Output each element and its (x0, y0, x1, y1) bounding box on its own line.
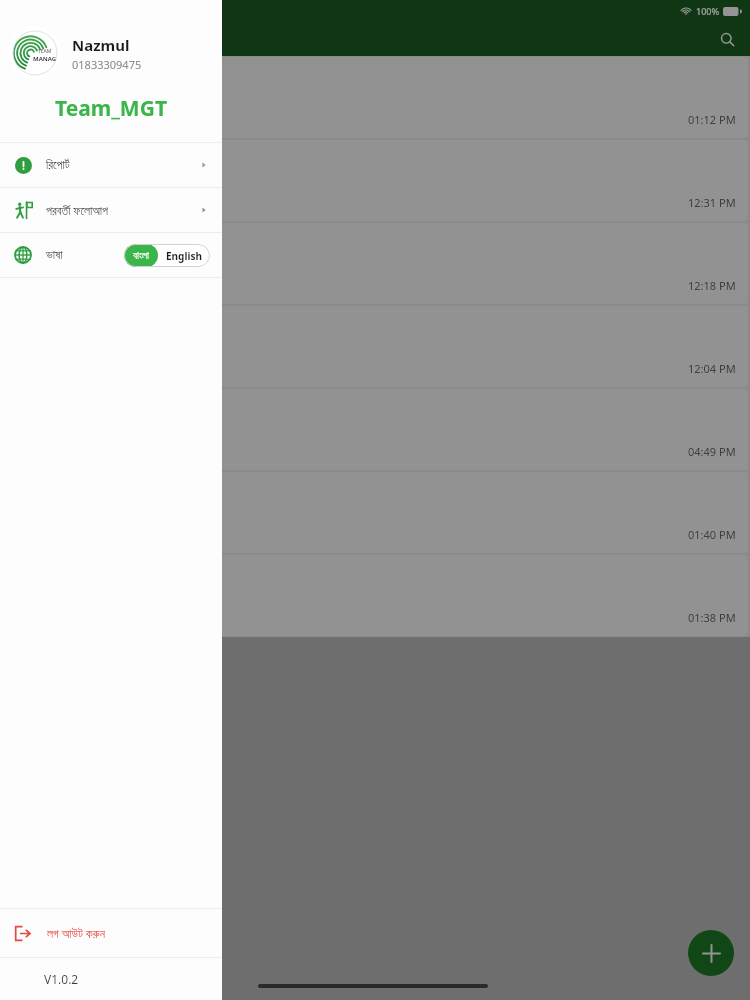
staticText: বাংলা (133, 251, 149, 261)
button[interactable]: 12:04 PM (2, 306, 748, 387)
staticText: Team_MGT (125, 43, 172, 55)
button[interactable]: বাংলা (124, 244, 210, 267)
button[interactable]: ভাষা (0, 233, 222, 277)
button[interactable]: Search (710, 22, 744, 56)
staticText: Nazmul (72, 35, 130, 55)
staticText: 01:12 PM (688, 112, 736, 127)
staticText: রিপোর্ট (46, 159, 70, 171)
button[interactable]: 04:49 PM (2, 389, 748, 470)
staticText: 12:31 PM (688, 195, 736, 210)
staticText: TEAM (38, 48, 52, 55)
button[interactable]: 01:38 PM (2, 555, 748, 636)
staticText: 12:04 PM (688, 361, 736, 376)
staticText: 04:49 PM (688, 444, 736, 459)
staticText: 100% (696, 5, 720, 17)
staticText: 01:40 PM (688, 527, 736, 542)
button[interactable]: Add (688, 930, 734, 976)
staticText: English (166, 249, 202, 263)
staticText: 01:38 PM (688, 610, 736, 625)
staticText: Team_MGT (55, 94, 167, 123)
staticText: Nazmul (125, 24, 172, 42)
button[interactable]: লগ আউট করুন (0, 909, 222, 957)
button[interactable]: পরবর্তী ফলোআপ (0, 188, 222, 232)
staticText: V1.0.2 (44, 971, 79, 987)
staticText: লগ আউট করুন (47, 925, 105, 941)
staticText: MANAG (33, 55, 57, 63)
button[interactable]: 01:40 PM (2, 472, 748, 553)
staticText: ভাষা (46, 249, 63, 261)
staticText: 12:18 PM (688, 278, 736, 293)
staticText: পরবর্তী ফলোআপ (46, 202, 108, 218)
staticText: 01833309475 (72, 57, 142, 72)
button[interactable]: 12:18 PM (2, 223, 748, 304)
button[interactable]: 01:12 PM (2, 57, 748, 138)
button[interactable]: 12:31 PM (2, 140, 748, 221)
button[interactable]: রিপোর্ট (0, 143, 222, 187)
